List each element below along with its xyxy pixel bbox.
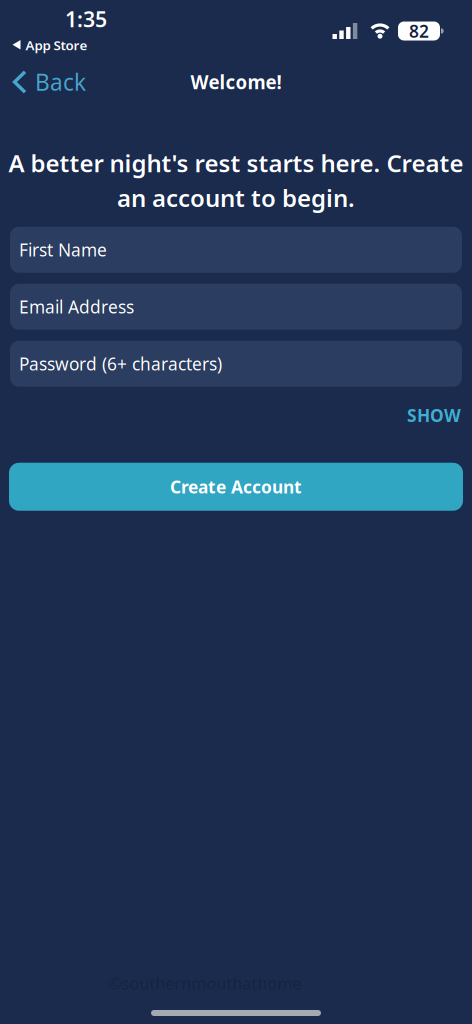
staticText: SHOW — [407, 404, 461, 427]
staticText: Password (6+ characters) — [19, 352, 222, 375]
staticText: Welcome! — [190, 70, 281, 94]
staticText: 82 — [409, 19, 429, 42]
staticText: 1:35 — [65, 5, 107, 33]
staticText: ©southernmouthathome — [108, 973, 301, 994]
staticText: Back — [35, 67, 86, 97]
button[interactable]: Back — [12, 67, 86, 97]
button[interactable]: SHOW — [407, 404, 461, 427]
button[interactable]: Password (6+ characters) — [10, 341, 462, 387]
button[interactable]: App Store — [12, 36, 87, 54]
button[interactable]: First Name — [10, 227, 462, 273]
staticText: A better night's rest starts here. Creat… — [8, 147, 463, 179]
button[interactable]: Create Account — [9, 463, 463, 511]
staticText: First Name — [19, 238, 107, 261]
staticText: App Store — [25, 36, 87, 54]
staticText: an account to begin. — [117, 182, 355, 214]
button[interactable]: Email Address — [10, 284, 462, 330]
staticText: Create Account — [170, 475, 302, 498]
staticText: Email Address — [19, 295, 134, 318]
